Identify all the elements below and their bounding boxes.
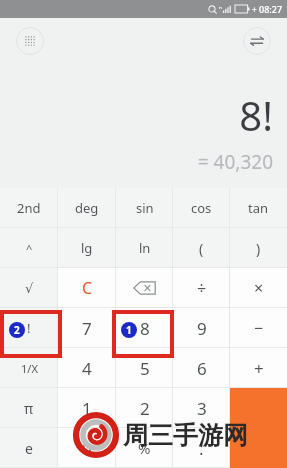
staticText: 9 <box>197 317 207 340</box>
button[interactable]: ln <box>116 228 173 268</box>
staticText: deg <box>75 199 99 217</box>
staticText: 2 <box>14 323 20 337</box>
staticText: × <box>254 277 264 299</box>
staticText: 2nd <box>17 199 41 217</box>
button[interactable]: 6 <box>173 348 230 388</box>
button[interactable]: Unit converter <box>243 27 271 55</box>
button[interactable]: deg <box>58 188 116 228</box>
staticText: e <box>25 439 33 458</box>
button[interactable]: lg <box>58 228 116 268</box>
staticText: cos <box>191 199 212 217</box>
staticText: ⁿ <box>219 4 222 14</box>
button[interactable]: × <box>230 268 287 308</box>
staticText: ( <box>199 239 204 258</box>
staticText: 7 <box>82 317 92 340</box>
button[interactable]: ) <box>230 228 287 268</box>
staticText: 8 <box>140 317 150 340</box>
staticText: ! <box>27 319 31 337</box>
button[interactable]: ÷ <box>173 268 230 308</box>
button[interactable]: 7 <box>58 308 116 348</box>
staticText: 8! <box>239 88 273 142</box>
staticText: 0 <box>82 437 92 460</box>
staticText: 5 <box>140 357 150 380</box>
button[interactable] <box>230 388 287 428</box>
button[interactable]: 8 <box>116 308 173 348</box>
button[interactable]: C <box>58 268 116 308</box>
staticText: C <box>82 277 93 299</box>
staticText: ln <box>139 239 151 257</box>
staticText: + <box>252 4 257 15</box>
staticText: 4 <box>82 357 92 380</box>
staticText: 1 <box>126 323 132 337</box>
staticText: 周三手游网 <box>123 420 248 451</box>
button[interactable]: e <box>0 428 58 468</box>
button[interactable]: 2 <box>116 388 173 428</box>
button[interactable]: 1/X <box>0 348 58 388</box>
staticText: lg <box>81 239 93 257</box>
button[interactable]: 1 <box>58 388 116 428</box>
staticText: % <box>138 438 151 458</box>
button[interactable]: sin <box>116 188 173 228</box>
staticText: − <box>254 317 264 339</box>
button[interactable]: 3 <box>173 388 230 428</box>
staticText: = 40,320 <box>197 149 273 175</box>
button[interactable]: ( <box>173 228 230 268</box>
staticText: 6 <box>197 357 207 380</box>
staticText: sin <box>136 199 154 217</box>
staticText: . <box>199 437 204 460</box>
staticText: 08:27 <box>259 3 283 15</box>
button[interactable] <box>230 428 287 468</box>
staticText: 2 <box>140 397 150 420</box>
button[interactable]: √ <box>0 268 58 308</box>
staticText: tan <box>248 199 269 217</box>
staticText: ÷ <box>197 277 207 299</box>
staticText: 1/X <box>21 361 38 376</box>
button[interactable]: ! <box>0 308 58 348</box>
button[interactable]: π <box>0 388 58 428</box>
button[interactable]: ^ <box>0 228 58 268</box>
button[interactable]: 9 <box>173 308 230 348</box>
button[interactable]: Backspace <box>116 268 173 308</box>
button[interactable]: 2nd <box>0 188 58 228</box>
button[interactable]: . <box>173 428 230 468</box>
button[interactable]: % <box>116 428 173 468</box>
button[interactable]: − <box>230 308 287 348</box>
button[interactable]: 0 <box>58 428 116 468</box>
other: Backspace <box>133 281 156 295</box>
staticText: √ <box>25 281 34 296</box>
staticText: π <box>24 399 34 418</box>
staticText: + <box>254 357 264 380</box>
staticText: ) <box>256 239 261 258</box>
button[interactable]: cos <box>173 188 230 228</box>
button[interactable]: 4 <box>58 348 116 388</box>
button[interactable]: Keypad modes <box>16 27 44 55</box>
button[interactable]: tan <box>230 188 287 228</box>
button[interactable]: 5 <box>116 348 173 388</box>
staticText: ^ <box>26 241 33 256</box>
staticText: 3 <box>197 397 207 420</box>
staticText: 1 <box>82 397 92 420</box>
button[interactable]: + <box>230 348 287 388</box>
